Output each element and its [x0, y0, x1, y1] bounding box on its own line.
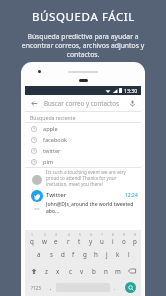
staticText: s	[50, 250, 53, 258]
staticText: f	[72, 250, 75, 258]
staticText: r	[67, 237, 70, 245]
button[interactable]: Its such a touching event we are very pr…	[25, 168, 141, 188]
staticText: 0	[134, 232, 136, 237]
staticText: 4	[68, 232, 70, 237]
button[interactable]: d	[57, 246, 68, 262]
staticText: Búsqueda predictiva para ayudar a encont…	[11, 32, 155, 59]
button[interactable]: Search	[120, 279, 140, 296]
button[interactable]: m	[112, 262, 124, 279]
staticText: k	[116, 250, 120, 258]
staticText: e	[54, 237, 58, 245]
staticText: .	[114, 284, 116, 291]
button[interactable]: n	[100, 262, 112, 279]
button[interactable]: .	[110, 279, 120, 296]
staticText: v	[80, 267, 84, 275]
button[interactable]: Back	[25, 95, 141, 111]
button[interactable]: Shift	[26, 262, 41, 279]
staticText: 6	[90, 232, 92, 237]
button[interactable]: j	[101, 246, 112, 262]
staticText: 5	[79, 232, 81, 237]
button[interactable]: ?123	[26, 279, 46, 296]
button[interactable]: 5	[74, 230, 85, 246]
staticText: 3	[55, 232, 57, 237]
staticText: h	[94, 250, 98, 258]
button[interactable]: a	[33, 246, 45, 262]
button[interactable]: Backspace	[124, 262, 140, 279]
staticText: 9	[123, 232, 125, 237]
staticText: o	[122, 237, 126, 245]
staticText: facebook	[43, 136, 68, 144]
other: Voice search	[127, 98, 137, 108]
button[interactable]: x	[52, 262, 64, 279]
staticText: q	[30, 237, 34, 245]
staticText: Buscar correo y contactos	[44, 99, 119, 107]
staticText: a	[37, 250, 41, 258]
button[interactable]: b	[88, 262, 100, 279]
staticText: 1	[31, 232, 33, 237]
staticText: n	[104, 267, 108, 275]
staticText: ,	[50, 284, 52, 291]
button[interactable]: pim	[25, 156, 141, 167]
button[interactable]: z	[41, 262, 52, 279]
staticText: ?123	[31, 285, 41, 291]
staticText: twitter	[43, 147, 61, 155]
button[interactable]: 1	[26, 230, 38, 246]
staticText: t	[78, 237, 81, 245]
staticText: Búsqueda reciente	[30, 114, 76, 121]
staticText: l	[128, 250, 130, 258]
staticText: 12:24	[125, 192, 138, 199]
staticText: 13:30	[124, 87, 138, 94]
staticText: 8	[112, 232, 114, 237]
staticText: 7	[101, 232, 103, 237]
staticText: x	[56, 267, 60, 275]
button[interactable]: 9	[118, 230, 129, 246]
button[interactable]: 3	[50, 230, 62, 246]
staticText: m	[115, 267, 121, 275]
button[interactable]: 7	[96, 230, 107, 246]
button[interactable]: k	[112, 246, 123, 262]
button[interactable]: 2	[38, 230, 50, 246]
staticText: Its such a touching event we are very pr…	[46, 169, 137, 187]
staticText: c	[69, 267, 72, 275]
button[interactable]: l	[123, 246, 134, 262]
staticText: g	[83, 250, 87, 258]
staticText: BÚSQUEDA FÁCIL	[32, 9, 135, 25]
staticText: d	[61, 250, 65, 258]
staticText: pim	[43, 158, 54, 166]
staticText: Twitter	[46, 191, 67, 199]
button[interactable]: twitter	[25, 145, 141, 156]
staticText: z	[45, 267, 48, 275]
staticText: u	[100, 237, 104, 245]
button[interactable]: v	[76, 262, 88, 279]
button[interactable]: f	[68, 246, 79, 262]
button[interactable]: apple	[25, 123, 141, 134]
button[interactable]: s	[45, 246, 57, 262]
staticText: b	[92, 267, 96, 275]
staticText: John@DJs_around the world tweeted abo...	[46, 201, 138, 215]
button[interactable]: 4	[62, 230, 74, 246]
other: Back	[30, 99, 39, 108]
button[interactable]: g	[79, 246, 90, 262]
staticText: j	[106, 250, 108, 258]
button[interactable]: ,	[46, 279, 56, 296]
staticText: i	[112, 237, 114, 245]
button[interactable]: facebook	[25, 134, 141, 145]
staticText: p	[133, 237, 137, 245]
button[interactable]: c	[64, 262, 76, 279]
button[interactable]: 6	[85, 230, 96, 246]
button[interactable]: 8	[107, 230, 118, 246]
staticText: w	[42, 237, 47, 245]
button[interactable]: 0	[129, 230, 140, 246]
staticText: apple	[43, 125, 58, 133]
staticText: 2	[44, 232, 46, 237]
button[interactable]: Twitter	[25, 188, 141, 218]
staticText: y	[89, 237, 93, 245]
button[interactable]: h	[90, 246, 101, 262]
